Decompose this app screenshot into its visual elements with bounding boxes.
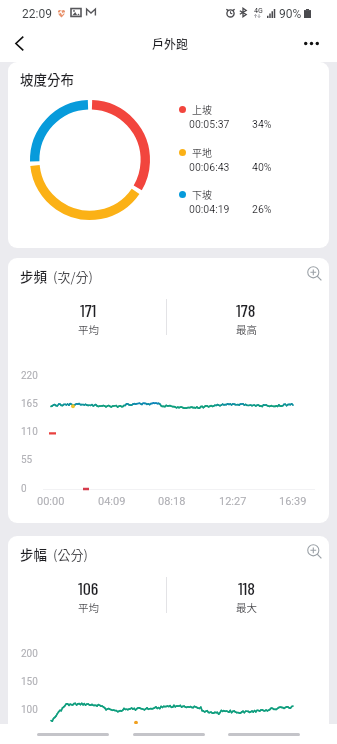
staticText: 12:27 [219,495,247,508]
staticText: 坡度分布 [20,69,74,89]
staticText: 90% [279,7,302,21]
staticText: 165 [21,398,38,410]
staticText: 26% [252,203,272,215]
staticText: 最大 [236,600,257,615]
staticText: (次/分) [53,267,93,286]
staticText: 0 [21,483,27,495]
staticText: 上坡 [192,102,212,116]
staticText: 00:04:19 [189,203,230,215]
staticText: 22:09 [22,7,52,21]
button[interactable]: Zoom in [304,541,325,562]
staticText: 00:06:43 [189,161,230,173]
button[interactable]: Zoom in [304,263,325,284]
staticText: 平均 [78,322,99,337]
staticText: 00:05:37 [189,118,230,130]
staticText: 106 [78,577,99,599]
staticText: 最高 [236,322,257,337]
staticText: 平均 [78,600,99,615]
staticText: 08:18 [158,495,186,508]
staticText: 171 [80,299,97,321]
staticText: 步頻 [20,266,47,286]
staticText: 110 [21,426,38,438]
staticText: 178 [236,299,256,321]
staticText: 步幅 [20,544,47,564]
staticText: 戶外跑 [152,35,189,52]
button[interactable]: More options [297,29,325,57]
staticText: 150 [21,676,38,688]
staticText: 220 [21,370,38,382]
staticText: 100 [21,704,38,716]
button[interactable]: Back [5,29,33,57]
staticText: 00:00 [37,495,65,508]
staticText: 40% [252,161,272,173]
staticText: 200 [21,648,38,660]
staticText: 34% [252,118,272,130]
staticText: 平地 [192,145,212,159]
staticText: 118 [238,577,255,599]
staticText: 16:39 [279,495,307,508]
staticText: 4G [254,7,263,15]
staticText: 下坡 [192,187,212,201]
staticText: 55 [21,454,33,466]
staticText: 04:09 [98,495,126,508]
staticText: (公分) [53,545,88,564]
